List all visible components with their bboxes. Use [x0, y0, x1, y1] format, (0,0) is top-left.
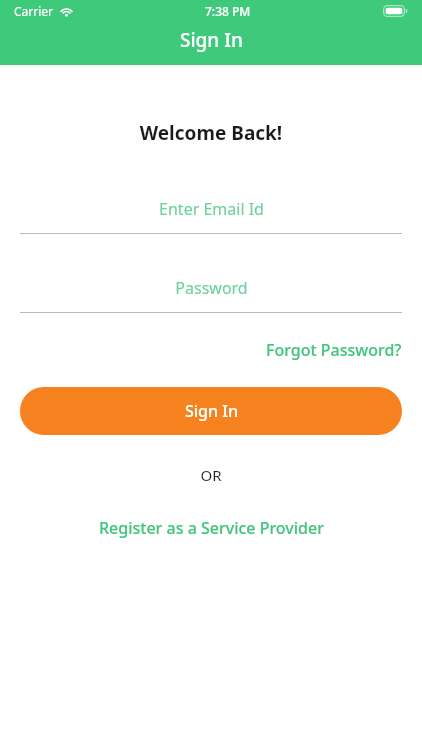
other: Wi-Fi signal [59, 6, 74, 17]
staticText: Carrier [14, 3, 54, 19]
staticText: Password [175, 277, 248, 299]
staticText: Enter Email Id [159, 198, 264, 220]
staticText: Sign In [180, 27, 243, 53]
staticText: OR [0, 465, 422, 485]
button[interactable]: Sign In [20, 387, 402, 435]
button[interactable]: Forgot Password? [266, 335, 402, 365]
staticText: Welcome Back! [0, 120, 422, 146]
staticText: Forgot Password? [266, 339, 402, 361]
staticText: Register as a Service Provider [99, 517, 324, 539]
staticText: Sign In [185, 400, 238, 422]
button[interactable]: Enter Email Id [20, 195, 402, 234]
button[interactable]: Register as a Service Provider [91, 513, 332, 543]
other: Battery full [383, 5, 408, 17]
staticText: 7:38 PM [205, 3, 251, 19]
button[interactable]: Password [20, 274, 402, 313]
